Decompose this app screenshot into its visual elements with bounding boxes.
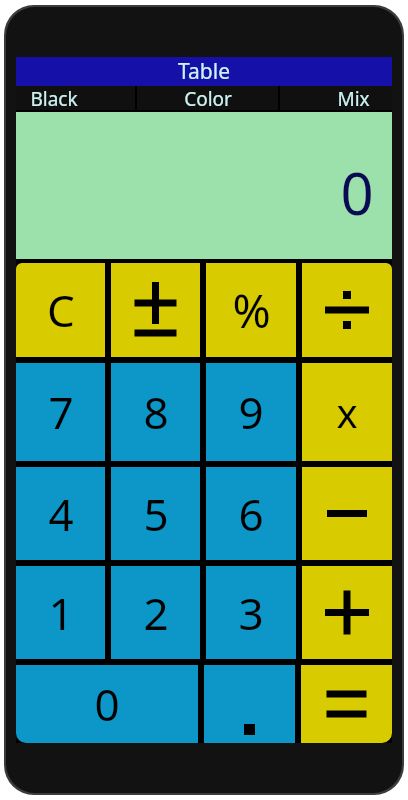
staticText: Black: [30, 86, 78, 110]
button[interactable]: 8: [111, 363, 200, 461]
button[interactable]: 6: [206, 467, 296, 560]
staticText: 5: [143, 484, 169, 544]
button[interactable]: 9: [206, 363, 296, 461]
staticText: 9: [238, 382, 264, 442]
staticText: 3: [238, 583, 264, 643]
button[interactable]: C: [16, 263, 105, 357]
staticText: 8: [143, 382, 169, 442]
staticText: 7: [48, 382, 74, 442]
button[interactable]: 3: [206, 566, 296, 659]
staticText: 4: [48, 484, 74, 544]
button[interactable]: 0: [16, 665, 198, 743]
button[interactable]: 0: [16, 112, 392, 259]
staticText: 6: [238, 484, 264, 544]
button[interactable]: -: [302, 467, 392, 560]
staticText: %: [232, 279, 271, 342]
staticText: Table: [178, 57, 230, 86]
button[interactable]: ±: [111, 263, 200, 357]
staticText: 0: [340, 153, 374, 232]
staticText: 0: [94, 674, 120, 734]
button[interactable]: =: [301, 665, 392, 743]
button[interactable]: .: [204, 665, 295, 743]
button[interactable]: x: [302, 363, 392, 461]
button[interactable]: Black: [16, 86, 135, 110]
button[interactable]: ÷: [302, 263, 392, 357]
staticText: Color: [184, 86, 232, 110]
staticText: C: [47, 280, 75, 340]
button[interactable]: 7: [16, 363, 105, 461]
button[interactable]: 2: [111, 566, 200, 659]
staticText: 1: [48, 583, 74, 643]
button[interactable]: Mix: [280, 86, 392, 110]
staticText: 2: [143, 583, 169, 643]
button[interactable]: Color: [137, 86, 278, 110]
button[interactable]: 5: [111, 467, 200, 560]
button[interactable]: %: [206, 263, 296, 357]
button[interactable]: 1: [16, 566, 105, 659]
staticText: Mix: [337, 86, 370, 110]
button[interactable]: +: [302, 566, 392, 659]
staticText: x: [336, 385, 358, 439]
button[interactable]: 4: [16, 467, 105, 560]
